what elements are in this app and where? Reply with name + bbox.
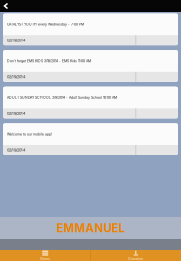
staticText: EMMANUEL [56, 221, 124, 235]
staticText: 02/19/2014 [7, 74, 25, 79]
staticText: CATALYST YOUTH every Wednesday - 7:00 PM [7, 22, 84, 26]
staticText: 02/19/2014 [7, 111, 25, 116]
staticText: Donation [128, 257, 143, 261]
staticText: Welcome to our mobile app! [7, 132, 52, 136]
staticText: 02/19/2014 [7, 148, 25, 152]
staticText: ADULT SUNDAY SCHOOL 3/9/2014 - Adult Sun… [7, 95, 117, 100]
button[interactable]: Donation [91, 250, 181, 261]
button[interactable]: News [0, 250, 90, 261]
staticText: News [40, 257, 50, 261]
button[interactable]: Don't forget EMS KIDS 3/18/2014 - EMS Ki… [3, 50, 178, 82]
button[interactable]: CATALYST YOUTH every Wednesday - 7:00 PM [3, 13, 178, 45]
button[interactable]: Back [0, 0, 14, 12]
button[interactable]: Welcome to our mobile app! [3, 123, 178, 155]
staticText: Don't forget EMS KIDS 3/18/2014 - EMS Ki… [7, 59, 91, 63]
staticText: 02/19/2014 [7, 38, 25, 43]
button[interactable]: ADULT SUNDAY SCHOOL 3/9/2014 - Adult Sun… [3, 87, 178, 118]
